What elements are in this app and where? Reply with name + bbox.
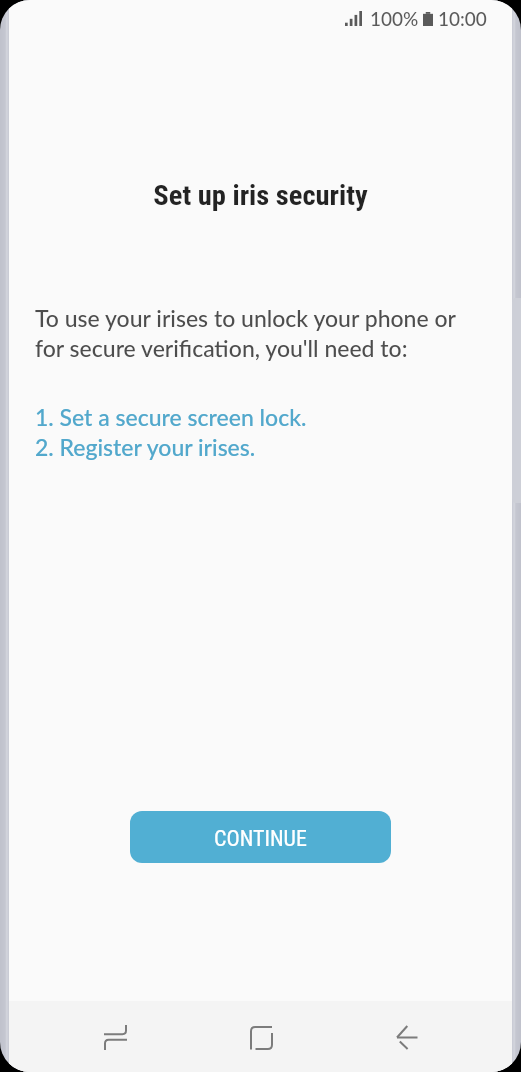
button[interactable]: CONTINUE bbox=[130, 811, 391, 863]
button[interactable]: 1. Set a secure screen lock. bbox=[35, 403, 307, 431]
button[interactable]: 2. Register your irises. bbox=[35, 433, 256, 461]
staticText: 10:00 bbox=[438, 7, 487, 30]
button[interactable]: Recent apps bbox=[42, 1001, 187, 1072]
staticText: Set up iris security bbox=[153, 179, 368, 212]
staticText: To use your irises to unlock your phone … bbox=[35, 304, 456, 332]
staticText: 100% bbox=[370, 7, 419, 30]
staticText: CONTINUE bbox=[214, 826, 307, 852]
button[interactable]: Back bbox=[333, 1001, 479, 1072]
staticText: for secure verification, you'll need to: bbox=[35, 334, 408, 362]
button[interactable]: Home bbox=[187, 1001, 333, 1072]
